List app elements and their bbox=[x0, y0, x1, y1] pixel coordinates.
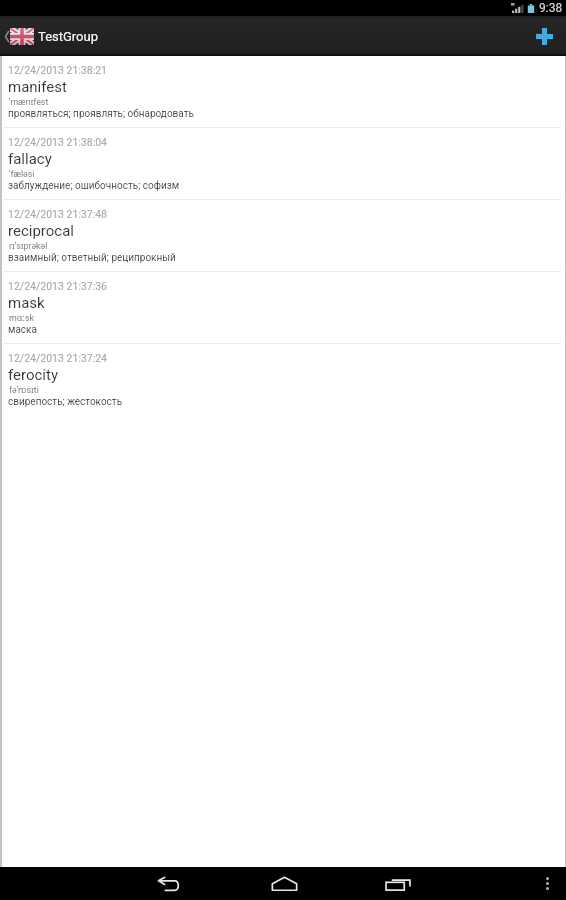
staticText: 12/24/2013 21:38:04 bbox=[8, 136, 107, 148]
staticText: mɑːsk bbox=[9, 312, 34, 324]
staticText: fallacy bbox=[8, 150, 52, 168]
button[interactable]: Add word bbox=[522, 16, 566, 56]
button[interactable]: Home bbox=[256, 867, 312, 900]
staticText: взаимный; ответный; реципрокный bbox=[8, 252, 176, 264]
staticText: mask bbox=[8, 294, 45, 312]
button[interactable]: 12/24/2013 21:37:48 bbox=[0, 200, 566, 272]
staticText: ˈfæləsi bbox=[9, 168, 35, 180]
staticText: 12/24/2013 21:37:36 bbox=[8, 280, 107, 292]
staticText: 12/24/2013 21:37:48 bbox=[8, 208, 107, 220]
button[interactable]: Recent apps bbox=[370, 867, 426, 900]
staticText: 12/24/2013 21:37:24 bbox=[8, 352, 107, 364]
button[interactable]: More options bbox=[530, 867, 566, 900]
staticText: reciprocal bbox=[8, 222, 74, 240]
button[interactable]: Back bbox=[140, 867, 196, 900]
staticText: rɪˈsɪprəkəl bbox=[9, 240, 48, 252]
staticText: 9:38 bbox=[539, 1, 563, 15]
staticText: 12/24/2013 21:38:21 bbox=[8, 64, 107, 76]
staticText: проявляться; проявлять; обнародовать bbox=[8, 108, 194, 120]
staticText: TestGroup bbox=[38, 29, 98, 44]
staticText: маска bbox=[8, 324, 37, 336]
staticText: заблуждение; ошибочность; софизм bbox=[8, 180, 180, 192]
button[interactable]: TestGroup bbox=[0, 16, 98, 56]
staticText: manifest bbox=[8, 78, 67, 96]
staticText: ˈmænɪfest bbox=[9, 96, 49, 108]
staticText: fəˈrɒsɪti bbox=[9, 384, 39, 396]
button[interactable]: 12/24/2013 21:37:36 bbox=[0, 272, 566, 344]
staticText: свирепость; жестокость bbox=[8, 396, 123, 408]
button[interactable]: 12/24/2013 21:37:24 bbox=[0, 344, 566, 416]
button[interactable]: 12/24/2013 21:38:21 bbox=[0, 56, 566, 128]
staticText: ferocity bbox=[8, 366, 58, 384]
button[interactable]: 12/24/2013 21:38:04 bbox=[0, 128, 566, 200]
